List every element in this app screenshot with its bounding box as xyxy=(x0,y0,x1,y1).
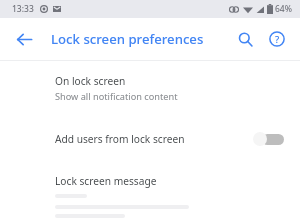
staticText: Lock screen preferences xyxy=(51,30,204,48)
button[interactable]: On lock screen xyxy=(0,70,300,109)
staticText: Show all notification content xyxy=(55,90,178,103)
button[interactable]: Add users from lock screen xyxy=(0,125,300,153)
button[interactable]: Back xyxy=(8,23,40,55)
button[interactable]: Search xyxy=(230,24,260,54)
button[interactable]: Help xyxy=(262,24,292,54)
button[interactable]: Lock screen preferences xyxy=(51,30,204,48)
button[interactable]: Lock screen message xyxy=(0,172,300,218)
staticText: 13:33 xyxy=(12,3,34,15)
staticText: On lock screen xyxy=(55,74,126,88)
staticText: 64% xyxy=(275,3,292,15)
staticText: ? xyxy=(275,33,280,46)
staticText: Add users from lock screen xyxy=(55,132,252,146)
button[interactable]: Add users from lock screen toggle xyxy=(252,129,286,149)
staticText: Lock screen message xyxy=(55,174,157,188)
